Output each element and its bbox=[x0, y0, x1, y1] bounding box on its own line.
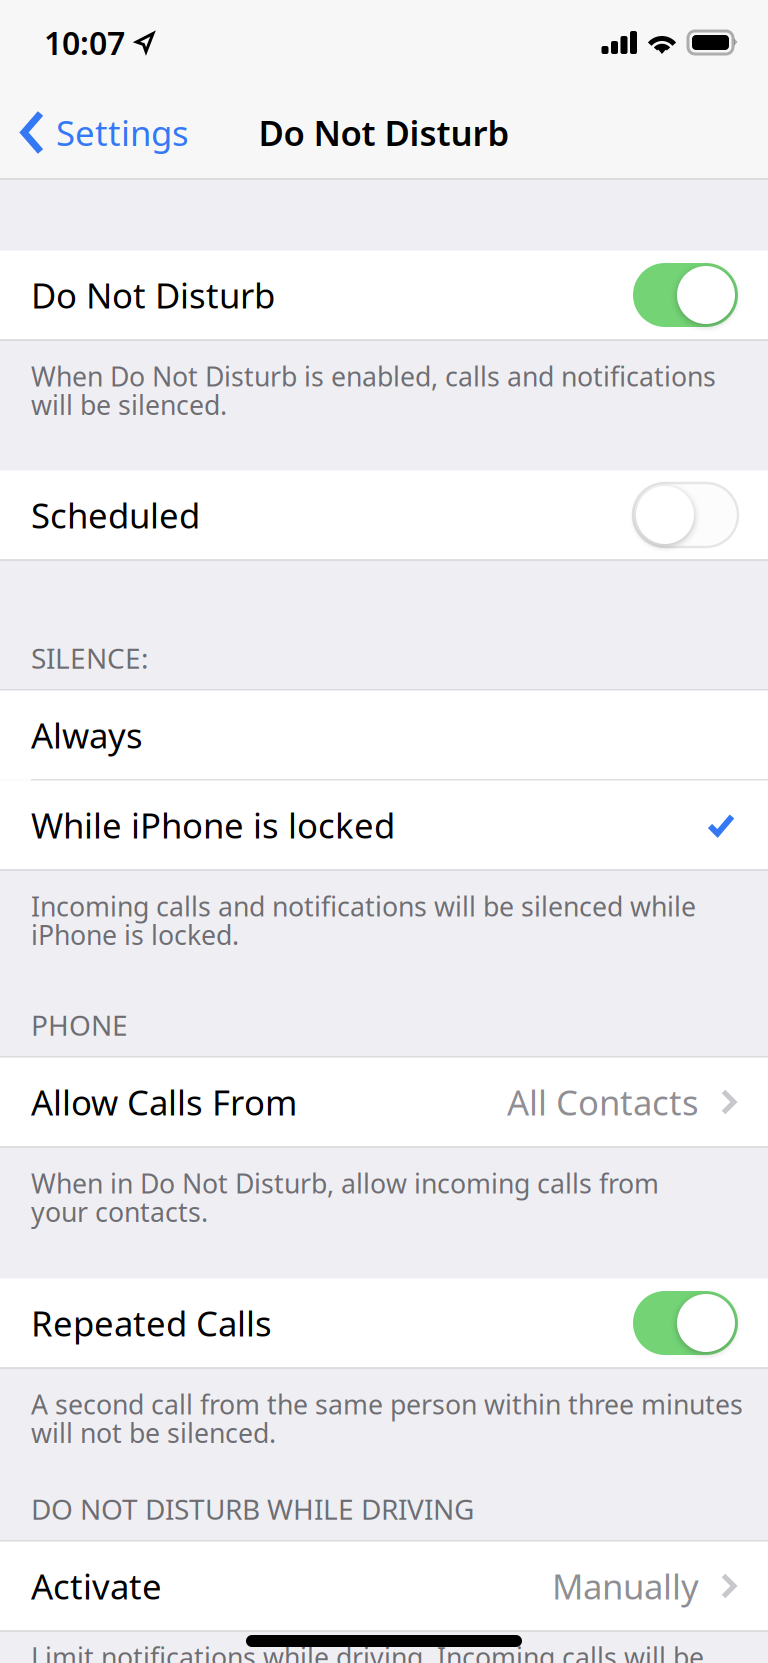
staticText: Settings bbox=[56, 109, 189, 155]
button[interactable]: Settings bbox=[0, 86, 203, 178]
staticText: Repeated Calls bbox=[31, 1300, 272, 1346]
button[interactable]: Do Not Disturb bbox=[0, 250, 768, 339]
staticText: Incoming calls and notifications will be… bbox=[31, 888, 696, 952]
staticText: When in Do Not Disturb, allow incoming c… bbox=[31, 1165, 659, 1229]
staticText: DO NOT DISTURB WHILE DRIVING bbox=[31, 1490, 474, 1527]
staticText: A second call from the same person withi… bbox=[31, 1386, 743, 1450]
staticText: Allow Calls From bbox=[31, 1079, 297, 1125]
button[interactable]: While iPhone is locked bbox=[0, 780, 768, 869]
button[interactable]: Scheduled bbox=[0, 470, 768, 559]
button[interactable]: Always bbox=[0, 690, 768, 779]
button[interactable]: Activate bbox=[0, 1541, 768, 1630]
staticText: When Do Not Disturb is enabled, calls an… bbox=[31, 358, 716, 422]
staticText: Always bbox=[31, 712, 143, 758]
staticText: While iPhone is locked bbox=[31, 802, 395, 848]
staticText: All Contacts bbox=[507, 1079, 699, 1125]
staticText: Scheduled bbox=[31, 492, 200, 538]
staticText: Limit notifications while driving. Incom… bbox=[31, 1639, 704, 1663]
staticText: SILENCE: bbox=[31, 639, 149, 676]
button[interactable]: Allow Calls From bbox=[0, 1057, 768, 1146]
staticText: Do Not Disturb bbox=[31, 272, 275, 318]
staticText: Activate bbox=[31, 1563, 162, 1609]
staticText: Manually bbox=[552, 1563, 699, 1609]
staticText: Do Not Disturb bbox=[258, 109, 509, 155]
staticText: PHONE bbox=[31, 1006, 128, 1043]
button[interactable]: Repeated Calls bbox=[0, 1278, 768, 1367]
staticText: 10:07 bbox=[44, 21, 125, 64]
